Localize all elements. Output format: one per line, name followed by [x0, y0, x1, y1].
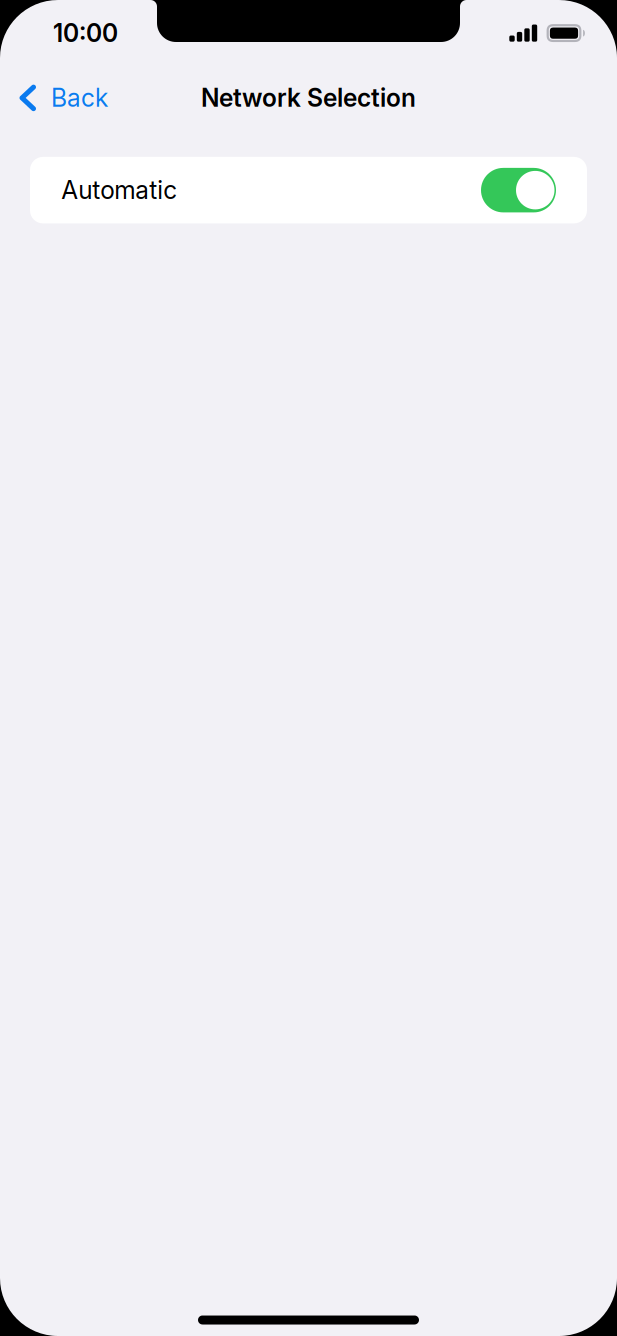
button[interactable]: Back: [0, 73, 122, 123]
staticText: 10:00: [53, 18, 118, 48]
staticText: Network Selection: [201, 83, 416, 113]
button[interactable]: On: [0, 157, 617, 223]
staticText: Automatic: [61, 175, 177, 205]
staticText: Back: [51, 83, 108, 113]
